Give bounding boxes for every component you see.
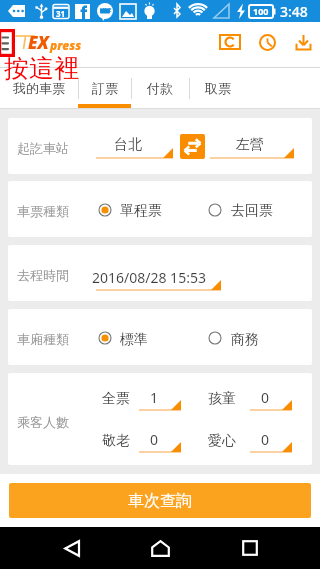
staticText: 2016/08/28 15:53 xyxy=(92,268,206,287)
button[interactable]: Download xyxy=(290,31,316,53)
button[interactable]: Home xyxy=(138,527,182,569)
button[interactable]: 車次查詢 xyxy=(9,483,311,518)
staticText: EX xyxy=(28,31,49,54)
staticText: LINE xyxy=(100,7,112,14)
staticText: 去回票 xyxy=(231,202,273,220)
staticText: 訂票 xyxy=(92,80,118,96)
button[interactable]: 2016/08/28 15:53 xyxy=(96,268,221,291)
staticText: 起訖車站 xyxy=(17,140,69,156)
staticText: 車票種類 xyxy=(17,203,69,219)
button[interactable]: 付款 xyxy=(131,68,189,108)
staticText: 31 xyxy=(56,8,66,19)
button[interactable]: Swap departure and arrival stations xyxy=(180,134,205,159)
button[interactable]: 訂票 xyxy=(78,68,131,108)
staticText: 全票 xyxy=(102,390,130,408)
staticText: 0 xyxy=(261,388,270,407)
staticText: 台北 xyxy=(114,136,142,154)
button[interactable]: 0 xyxy=(139,430,181,453)
staticText: 我的車票 xyxy=(13,80,65,96)
staticText: 愛心 xyxy=(208,432,236,450)
button[interactable]: Recent history xyxy=(254,31,280,53)
button[interactable]: 台北 xyxy=(96,136,173,159)
staticText: 付款 xyxy=(147,80,173,96)
button[interactable]: 0 xyxy=(250,388,292,411)
button[interactable] xyxy=(95,328,165,350)
button[interactable] xyxy=(205,328,276,350)
staticText: 左營 xyxy=(236,136,264,154)
staticText: 商務 xyxy=(231,331,259,349)
button[interactable] xyxy=(205,200,276,222)
staticText: 孩童 xyxy=(208,390,236,408)
button[interactable]: Back xyxy=(50,527,94,569)
staticText: 敬老 xyxy=(102,432,130,450)
button[interactable]: Recent apps xyxy=(228,527,272,569)
staticText: 3:48 xyxy=(280,2,308,21)
staticText: 單程票 xyxy=(120,202,162,220)
staticText: 按這裡 xyxy=(4,53,79,84)
button[interactable]: Menu xyxy=(1,33,13,53)
staticText: 標準 xyxy=(120,331,148,349)
button[interactable]: 左營 xyxy=(210,136,294,159)
staticText: 取票 xyxy=(205,80,231,96)
staticText: press xyxy=(50,37,82,53)
button[interactable] xyxy=(95,200,165,222)
button[interactable]: 0 xyxy=(250,430,292,453)
staticText: 100 xyxy=(253,5,269,17)
staticText: 1 xyxy=(150,388,159,407)
button[interactable]: 我的車票 xyxy=(0,68,78,108)
staticText: 車廂種類 xyxy=(17,331,69,347)
staticText: 車次查詢 xyxy=(128,491,192,511)
button[interactable]: Captcha xyxy=(216,31,244,53)
staticText: 去程時間 xyxy=(17,267,69,283)
staticText: 0 xyxy=(261,430,270,449)
button[interactable]: 取票 xyxy=(189,68,246,108)
button[interactable]: 1 xyxy=(139,388,181,411)
staticText: 乘客人數 xyxy=(17,414,69,430)
staticText: 0 xyxy=(150,430,159,449)
